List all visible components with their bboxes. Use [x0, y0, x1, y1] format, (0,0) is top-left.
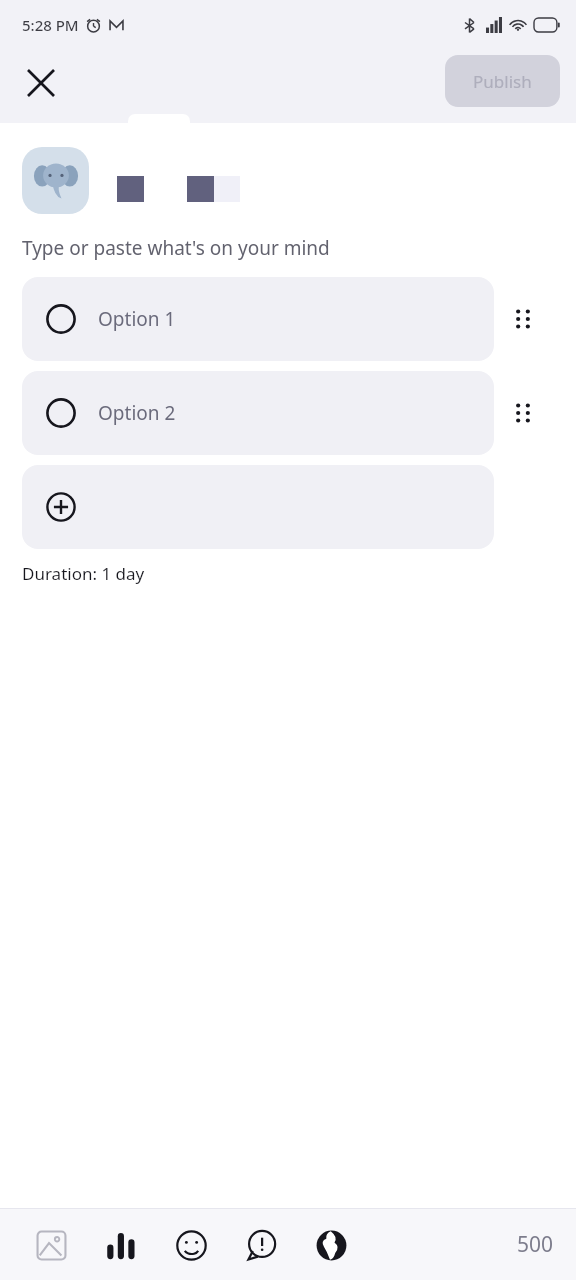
button[interactable]: Duration: 1 day: [22, 562, 145, 585]
staticText: Type or paste what's on your mind: [22, 235, 330, 261]
button[interactable]: Reorder Option 1: [494, 277, 552, 361]
button[interactable]: Account avatar: [22, 147, 89, 214]
staticText: Publish: [473, 70, 532, 93]
button[interactable]: Publish: [445, 55, 560, 107]
staticText: Option 1: [98, 306, 176, 332]
staticText: Duration: 1 day: [22, 562, 145, 585]
staticText: Option 2: [98, 400, 176, 426]
button[interactable]: Add image: [16, 1210, 86, 1280]
button[interactable]: Add option: [22, 465, 494, 549]
button[interactable]: Type or paste what's on your mind: [22, 230, 554, 266]
button[interactable]: Content warning: [226, 1210, 296, 1280]
button[interactable]: Add emoji: [156, 1210, 226, 1280]
button[interactable]: Reorder Option 2: [494, 371, 552, 455]
staticText: 500: [517, 1230, 554, 1259]
button[interactable]: Visibility: [296, 1210, 366, 1280]
staticText: 5:28 PM: [22, 15, 79, 35]
button[interactable]: Add poll: [86, 1210, 156, 1280]
button[interactable]: Close: [14, 56, 68, 110]
button[interactable]: Option 2: [22, 371, 494, 455]
button[interactable]: Option 1: [22, 277, 494, 361]
